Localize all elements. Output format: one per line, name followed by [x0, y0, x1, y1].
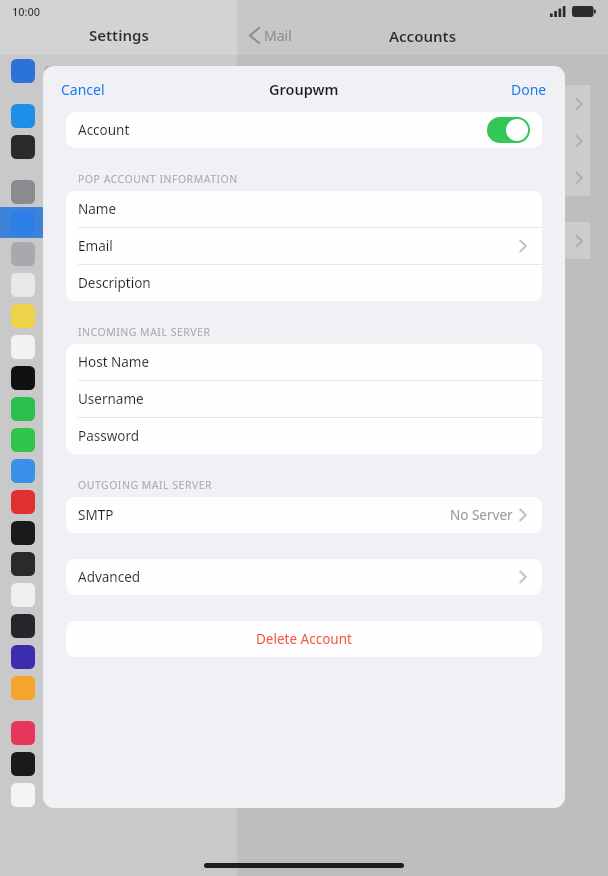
- staticText: Description: [78, 274, 151, 292]
- button[interactable]: [0, 517, 237, 548]
- button[interactable]: Account: [66, 112, 542, 148]
- staticText: Done: [511, 80, 547, 99]
- button[interactable]: Username: [66, 381, 542, 417]
- button[interactable]: [0, 300, 237, 331]
- button[interactable]: Name: [66, 191, 542, 227]
- button[interactable]: [0, 548, 237, 579]
- button[interactable]: [0, 672, 237, 703]
- button[interactable]: [255, 159, 590, 196]
- button[interactable]: Host Name: [66, 344, 542, 380]
- button[interactable]: [0, 579, 237, 610]
- button[interactable]: [0, 176, 237, 207]
- staticText: Accounts: [389, 26, 457, 46]
- staticText: Name: [78, 200, 117, 218]
- staticText: Username: [78, 390, 144, 408]
- button[interactable]: [0, 610, 237, 641]
- button[interactable]: Email: [66, 228, 542, 264]
- button[interactable]: [0, 641, 237, 672]
- staticText: OUTGOING MAIL SERVER: [78, 478, 213, 492]
- button[interactable]: [0, 131, 237, 162]
- staticText: Cancel: [61, 80, 105, 99]
- button[interactable]: [0, 717, 237, 748]
- button[interactable]: Done: [493, 72, 565, 107]
- button[interactable]: Password: [66, 418, 542, 454]
- button[interactable]: [255, 222, 590, 259]
- button[interactable]: [0, 424, 237, 455]
- button[interactable]: [255, 85, 590, 122]
- button[interactable]: [0, 269, 237, 300]
- button[interactable]: Advanced: [66, 559, 542, 595]
- staticText: 10:00: [12, 4, 41, 19]
- staticText: Host Name: [78, 353, 150, 371]
- staticText: Delete Account: [256, 630, 352, 648]
- button[interactable]: Mail: [246, 22, 296, 49]
- staticText: Mail: [264, 26, 292, 45]
- staticText: Advanced: [78, 568, 141, 586]
- button[interactable]: [0, 455, 237, 486]
- staticText: SMTP: [78, 506, 114, 524]
- staticText: No Server: [450, 506, 513, 524]
- button[interactable]: [0, 207, 237, 238]
- button[interactable]: [0, 238, 237, 269]
- staticText: INCOMING MAIL SERVER: [78, 325, 211, 339]
- staticText: Account: [78, 121, 130, 139]
- button[interactable]: Cancel: [43, 72, 123, 107]
- staticText: Settings: [89, 25, 149, 45]
- button[interactable]: [0, 331, 237, 362]
- staticText: POP ACCOUNT INFORMATION: [78, 172, 238, 186]
- staticText: Groupwm: [269, 79, 339, 99]
- button[interactable]: [0, 486, 237, 517]
- button[interactable]: [0, 748, 237, 779]
- button[interactable]: SMTP: [66, 497, 542, 533]
- staticText: Password: [78, 427, 140, 445]
- staticText: Email: [78, 237, 113, 255]
- button[interactable]: [0, 393, 237, 424]
- button[interactable]: Delete Account: [66, 621, 542, 657]
- button[interactable]: [255, 122, 590, 159]
- button[interactable]: Account toggle, on: [487, 117, 530, 143]
- button[interactable]: Description: [66, 265, 542, 301]
- button[interactable]: [0, 55, 237, 86]
- button[interactable]: [0, 362, 237, 393]
- button[interactable]: [0, 779, 237, 810]
- button[interactable]: [0, 100, 237, 131]
